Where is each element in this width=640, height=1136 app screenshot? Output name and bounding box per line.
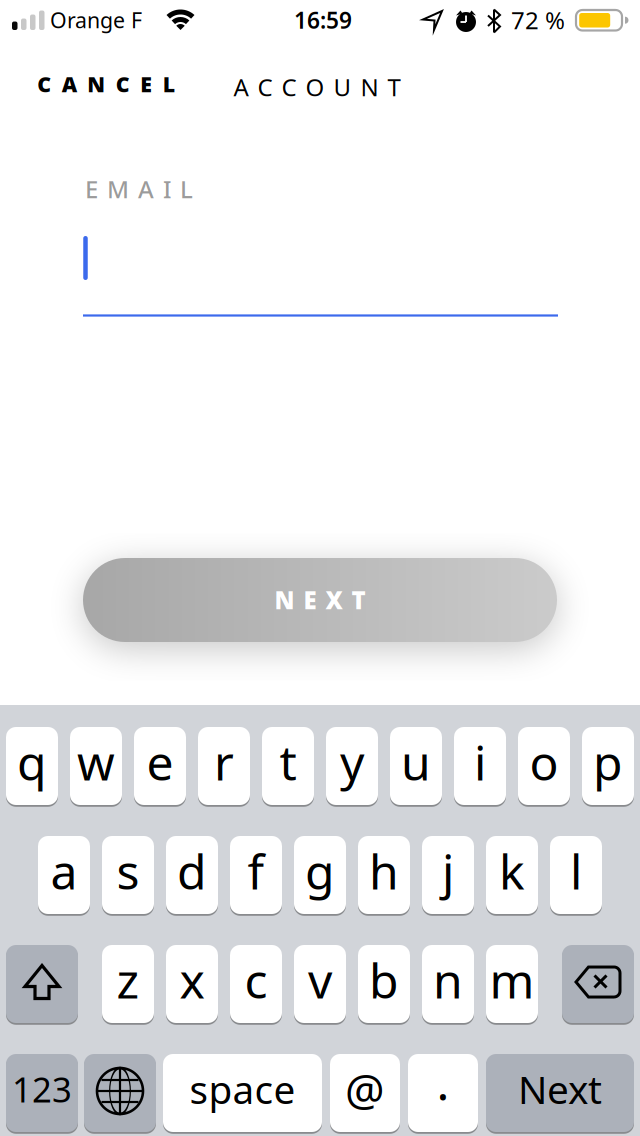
staticText: CANCEL bbox=[37, 70, 175, 98]
button[interactable]: Next keyboard bbox=[84, 1053, 156, 1133]
staticText: h bbox=[369, 839, 399, 903]
staticText: p bbox=[593, 730, 623, 794]
button[interactable]: y bbox=[326, 726, 378, 806]
staticText: u bbox=[401, 730, 431, 794]
staticText: 123 bbox=[12, 1066, 72, 1112]
staticText: q bbox=[17, 730, 47, 794]
staticText: b bbox=[369, 948, 399, 1012]
button[interactable]: space bbox=[163, 1053, 322, 1133]
button[interactable]: Delete bbox=[562, 944, 634, 1024]
staticText: k bbox=[499, 839, 525, 903]
staticText: r bbox=[214, 730, 234, 794]
staticText: f bbox=[247, 839, 264, 903]
staticText: d bbox=[177, 839, 207, 903]
staticText: l bbox=[570, 839, 582, 903]
button[interactable]: k bbox=[486, 835, 538, 915]
button[interactable]: o bbox=[518, 726, 570, 806]
staticText: s bbox=[116, 839, 139, 903]
button[interactable]: j bbox=[422, 835, 474, 915]
staticText: a bbox=[50, 839, 77, 903]
button[interactable]: @ bbox=[330, 1053, 400, 1133]
button[interactable]: d bbox=[166, 835, 218, 915]
button[interactable]: 123 bbox=[6, 1053, 78, 1133]
button[interactable]: u bbox=[390, 726, 442, 806]
staticText: e bbox=[146, 730, 173, 794]
staticText: NEXT bbox=[274, 584, 365, 616]
button[interactable]: g bbox=[294, 835, 346, 915]
button[interactable]: r bbox=[198, 726, 250, 806]
staticText: w bbox=[77, 730, 115, 794]
staticText: n bbox=[433, 948, 463, 1012]
staticText: Orange F bbox=[50, 6, 142, 34]
button[interactable]: q bbox=[6, 726, 58, 806]
button[interactable]: c bbox=[230, 944, 282, 1024]
staticText: Next bbox=[518, 1063, 602, 1115]
button[interactable]: t bbox=[262, 726, 314, 806]
button[interactable]: . bbox=[408, 1053, 478, 1133]
button[interactable]: n bbox=[422, 944, 474, 1024]
button[interactable]: m bbox=[486, 944, 538, 1024]
staticText: m bbox=[489, 948, 534, 1012]
button[interactable]: w bbox=[70, 726, 122, 806]
staticText: @ bbox=[345, 1060, 385, 1118]
button[interactable]: Next bbox=[486, 1053, 634, 1133]
staticText: EMAIL bbox=[85, 173, 193, 205]
button[interactable]: Shift bbox=[6, 944, 78, 1024]
button[interactable]: b bbox=[358, 944, 410, 1024]
staticText: x bbox=[179, 948, 204, 1012]
staticText: j bbox=[442, 839, 454, 903]
button[interactable]: h bbox=[358, 835, 410, 915]
staticText: 72 % bbox=[511, 4, 565, 36]
button[interactable]: e bbox=[134, 726, 186, 806]
staticText: c bbox=[244, 948, 267, 1012]
button[interactable]: p bbox=[582, 726, 634, 806]
staticText: t bbox=[279, 730, 296, 794]
staticText: ACCOUNT bbox=[233, 71, 400, 103]
staticText: space bbox=[189, 1063, 295, 1115]
button[interactable]: a bbox=[38, 835, 90, 915]
button[interactable]: i bbox=[454, 726, 506, 806]
button[interactable]: x bbox=[166, 944, 218, 1024]
button[interactable]: CANCEL bbox=[37, 70, 175, 98]
button[interactable]: z bbox=[102, 944, 154, 1024]
staticText: z bbox=[116, 948, 139, 1012]
button[interactable]: l bbox=[550, 835, 602, 915]
staticText: . bbox=[436, 1050, 449, 1114]
button[interactable]: v bbox=[294, 944, 346, 1024]
staticText: i bbox=[474, 730, 486, 794]
staticText: y bbox=[340, 730, 364, 794]
button[interactable]: NEXT bbox=[83, 558, 557, 642]
staticText: o bbox=[529, 730, 558, 794]
button[interactable]: f bbox=[230, 835, 282, 915]
button[interactable]: s bbox=[102, 835, 154, 915]
staticText: g bbox=[305, 839, 335, 903]
staticText: v bbox=[308, 948, 332, 1012]
staticText: 16:59 bbox=[294, 5, 352, 35]
